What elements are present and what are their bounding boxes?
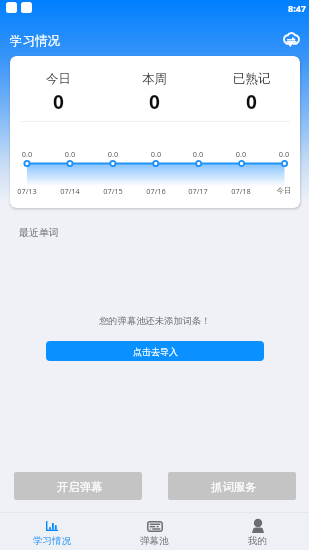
button[interactable]: 同步	[281, 29, 302, 50]
staticText: 07/17	[183, 186, 213, 196]
staticText: 最近单词	[19, 226, 59, 238]
staticText: 0.0	[55, 149, 85, 159]
staticText: 0	[149, 89, 160, 115]
staticText: 0.0	[226, 149, 256, 159]
staticText: 0.0	[141, 149, 171, 159]
staticText: 07/18	[226, 186, 256, 196]
staticText: 8:47	[288, 2, 306, 14]
staticText: 我的	[248, 535, 267, 547]
staticText: 07/15	[98, 186, 128, 196]
staticText: 0.0	[183, 149, 213, 159]
staticText: 07/16	[141, 186, 171, 196]
staticText: 今日	[269, 186, 299, 195]
staticText: 学习情况	[33, 535, 71, 547]
staticText: 07/13	[12, 186, 42, 196]
staticText: 0	[246, 89, 257, 115]
staticText: 学习情况	[10, 33, 60, 49]
staticText: 0	[53, 89, 64, 115]
staticText: 开启弹幕	[57, 480, 103, 494]
staticText: 本周	[142, 71, 167, 87]
button[interactable]: 我的	[206, 513, 309, 550]
button[interactable]: 学习情况	[0, 513, 103, 550]
staticText: 弹幕池	[140, 535, 169, 547]
staticText: 已熟记	[233, 71, 271, 87]
button[interactable]: 点击去导入	[46, 341, 264, 361]
staticText: 0.0	[12, 149, 42, 159]
staticText: 抓词服务	[211, 480, 257, 494]
staticText: 您的弹幕池还未添加词条！	[99, 315, 211, 327]
staticText: 07/14	[55, 186, 85, 196]
button[interactable]: 弹幕池	[103, 513, 206, 550]
staticText: 0.0	[269, 149, 299, 159]
staticText: 0.0	[98, 149, 128, 159]
staticText: 点击去导入	[133, 346, 178, 357]
button[interactable]: 开启弹幕	[14, 472, 142, 500]
button[interactable]: 抓词服务	[168, 472, 296, 500]
staticText: 今日	[46, 71, 71, 87]
